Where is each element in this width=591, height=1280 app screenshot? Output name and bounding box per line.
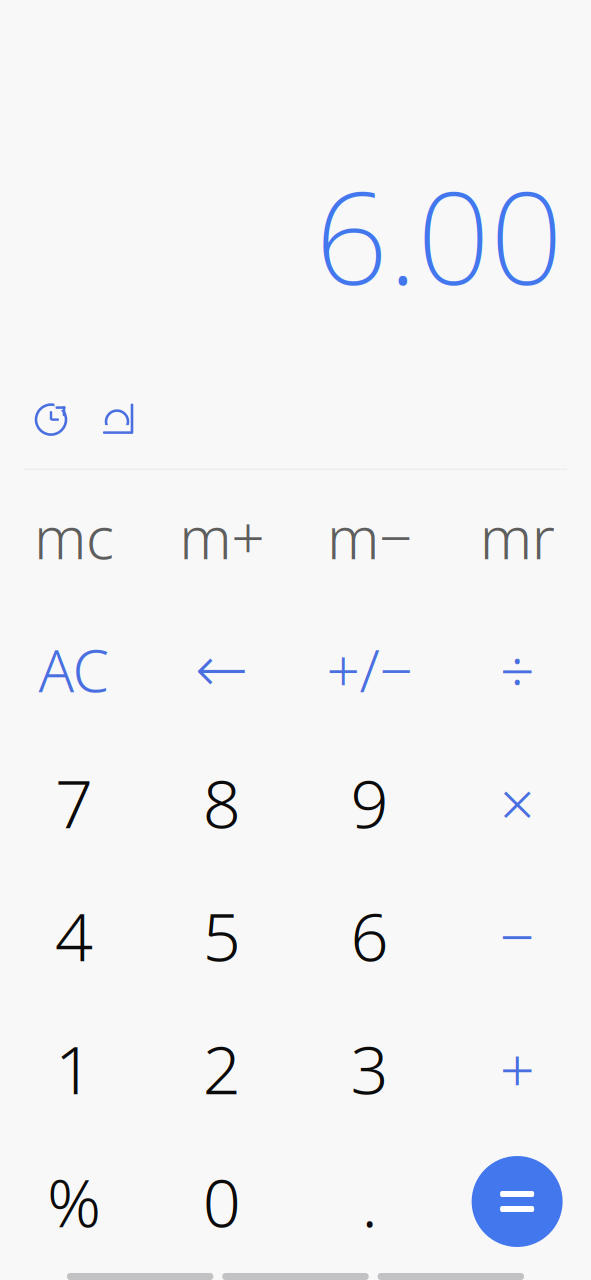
button[interactable]: 1 xyxy=(0,1002,148,1135)
button[interactable]: mc xyxy=(0,470,148,603)
staticText: 5 xyxy=(203,891,241,980)
staticText: 0 xyxy=(203,1157,241,1246)
button[interactable]: % xyxy=(0,1135,148,1268)
staticText: 1 xyxy=(55,1024,93,1113)
button[interactable]: 2 xyxy=(148,1002,296,1135)
staticText: 6 xyxy=(350,891,388,980)
button[interactable]: AC xyxy=(0,603,148,736)
button[interactable]: − xyxy=(443,869,591,1002)
staticText: 8 xyxy=(203,758,241,847)
staticText: ← xyxy=(195,633,249,706)
button[interactable]: 3 xyxy=(295,1002,443,1135)
button[interactable]: History xyxy=(33,402,69,438)
staticText: 9 xyxy=(350,758,388,847)
staticText: m+ xyxy=(179,497,264,575)
staticText: +/− xyxy=(326,630,412,708)
staticText: AC xyxy=(38,630,109,708)
button[interactable]: Graph xyxy=(101,402,137,438)
button[interactable]: +/− xyxy=(295,603,443,736)
staticText: − xyxy=(500,895,535,976)
button[interactable]: m− xyxy=(295,470,443,603)
staticText: 3 xyxy=(350,1024,388,1113)
staticText: mr xyxy=(480,497,555,575)
button[interactable]: ← xyxy=(148,603,296,736)
staticText: × xyxy=(500,762,535,843)
button[interactable]: 4 xyxy=(0,869,148,1002)
button[interactable]: 8 xyxy=(148,736,296,869)
button[interactable]: Equals xyxy=(443,1135,591,1268)
staticText: 6.00 xyxy=(315,150,563,320)
staticText: 4 xyxy=(55,891,93,980)
button[interactable]: . xyxy=(295,1135,443,1268)
button[interactable]: 6 xyxy=(295,869,443,1002)
staticText: 7 xyxy=(55,758,93,847)
staticText: m− xyxy=(327,497,412,575)
button[interactable]: 9 xyxy=(295,736,443,869)
staticText: % xyxy=(47,1157,101,1246)
button[interactable]: ÷ xyxy=(443,603,591,736)
staticText: mc xyxy=(34,497,114,575)
button[interactable]: × xyxy=(443,736,591,869)
button[interactable]: 7 xyxy=(0,736,148,869)
button[interactable]: 5 xyxy=(148,869,296,1002)
staticText: . xyxy=(361,1157,377,1246)
button[interactable]: mr xyxy=(443,470,591,603)
staticText: ÷ xyxy=(500,629,535,710)
button[interactable]: m+ xyxy=(148,470,296,603)
staticText: 2 xyxy=(203,1024,241,1113)
staticText: + xyxy=(500,1028,535,1109)
button[interactable]: + xyxy=(443,1002,591,1135)
button[interactable]: 0 xyxy=(148,1135,296,1268)
